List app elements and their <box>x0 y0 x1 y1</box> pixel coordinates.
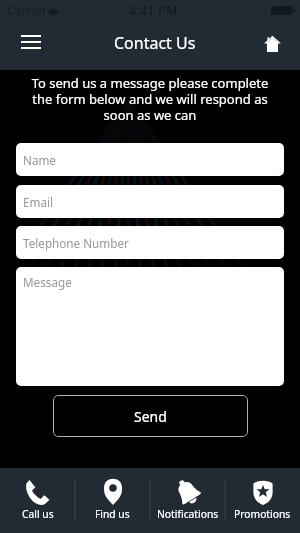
staticText: Email <box>23 194 54 210</box>
button[interactable]: Send <box>53 395 248 437</box>
staticText: Promotions <box>234 507 291 521</box>
button[interactable]: Notifications <box>150 468 225 533</box>
staticText: Carrier <box>7 2 48 18</box>
staticText: Find us <box>95 507 130 521</box>
staticText: Message <box>23 274 72 290</box>
button[interactable]: Call us <box>0 468 75 533</box>
staticText: Name <box>23 152 56 168</box>
staticText: To send us a message please complete the… <box>0 74 300 123</box>
staticText: Send <box>134 407 167 426</box>
staticText: Telephone Number <box>23 235 129 251</box>
button[interactable]: Message <box>16 267 284 386</box>
staticText: Call us <box>22 507 54 521</box>
staticText: Contact Us <box>114 32 196 54</box>
button[interactable]: Telephone Number <box>16 226 284 259</box>
button[interactable]: Email <box>16 185 284 218</box>
button[interactable]: Menu <box>11 22 51 62</box>
button[interactable]: Home <box>252 23 292 63</box>
button[interactable]: Promotions <box>225 468 300 533</box>
button[interactable]: Find us <box>75 468 150 533</box>
staticText: 4:41 PM <box>129 2 178 19</box>
button[interactable]: Name <box>16 143 284 176</box>
staticText: Notifications <box>157 507 219 521</box>
